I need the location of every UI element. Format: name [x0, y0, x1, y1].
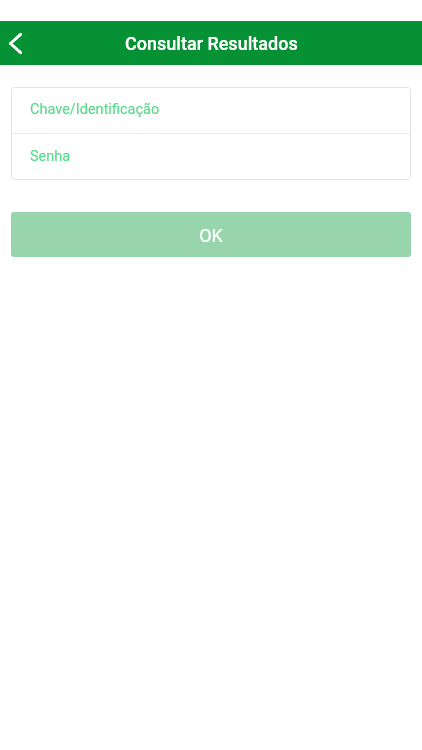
staticText: Chave/Identificação: [30, 101, 160, 118]
button[interactable]: Back: [0, 21, 44, 65]
staticText: OK: [199, 225, 223, 246]
button[interactable]: Senha: [11, 134, 411, 180]
button[interactable]: Chave/Identificação: [11, 87, 411, 133]
staticText: Senha: [30, 148, 71, 165]
staticText: Consultar Resultados: [125, 33, 298, 54]
button[interactable]: OK: [11, 212, 411, 257]
